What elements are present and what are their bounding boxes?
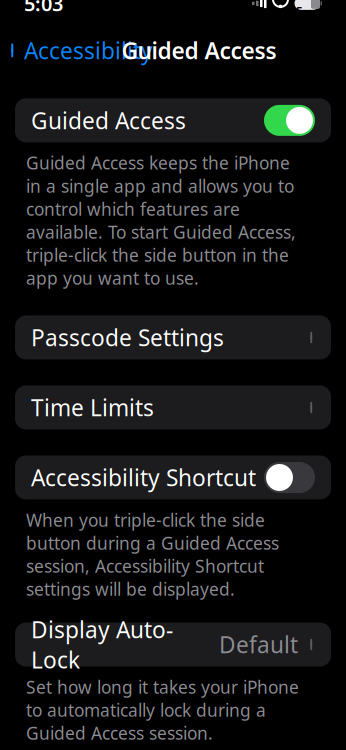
staticText: When you triple-click the side button du… [26,508,279,601]
button[interactable]: Accessibility Shortcut [15,455,331,499]
staticText: Passcode Settings [31,322,224,352]
button[interactable]: Accessibility [0,29,153,71]
staticText: Set how long it takes your iPhone to aut… [26,676,299,745]
button[interactable]: Guided Access [15,98,331,142]
staticText: Guided Access keeps the iPhone in a sing… [26,151,296,289]
staticText: Time Limits [31,392,154,422]
staticText: 5:03 [24,0,63,17]
staticText: Guided Access [31,105,186,135]
button[interactable]: Passcode Settings [15,315,331,359]
staticText: Accessibility [24,35,153,65]
staticText: Display Auto-Lock [31,614,173,675]
button[interactable]: Display Auto-Lock [15,623,331,667]
staticText: Accessibility Shortcut [31,462,256,492]
button[interactable]: Time Limits [15,385,331,429]
staticText: Guided Access [121,35,276,65]
staticText: 45 [296,0,303,19]
staticText: Default [219,629,298,660]
